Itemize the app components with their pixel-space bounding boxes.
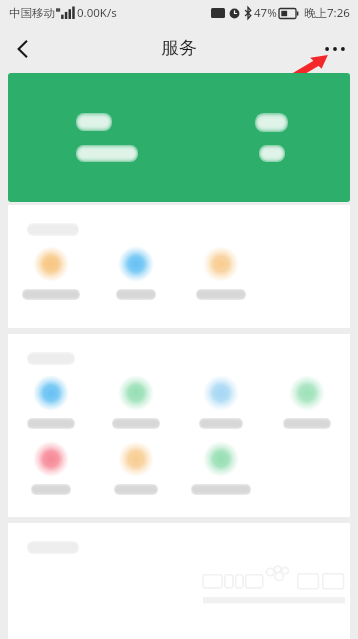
staticText: 47% xyxy=(254,5,277,21)
staticText: 中国移动 xyxy=(9,6,55,20)
button[interactable] xyxy=(116,240,156,306)
button[interactable] xyxy=(283,369,331,435)
button[interactable]: Back xyxy=(0,26,46,71)
button[interactable] xyxy=(8,73,350,202)
button[interactable] xyxy=(114,435,158,501)
staticText: 服务 xyxy=(161,37,197,60)
button[interactable] xyxy=(27,369,75,435)
staticText: 晚上7:26 xyxy=(304,5,350,21)
button[interactable] xyxy=(22,240,80,306)
button[interactable] xyxy=(191,435,251,501)
button[interactable] xyxy=(196,240,246,306)
button[interactable] xyxy=(112,369,160,435)
button[interactable]: More options xyxy=(312,26,358,71)
staticText: 0.00K/s xyxy=(77,5,117,21)
button[interactable] xyxy=(199,369,243,435)
button[interactable] xyxy=(31,435,71,501)
